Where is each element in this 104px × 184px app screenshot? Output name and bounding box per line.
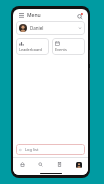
staticText: Events: [55, 47, 67, 52]
button[interactable]: Daniel: [16, 21, 85, 35]
button[interactable]: Open menu: [17, 11, 25, 19]
button[interactable]: Search: [31, 158, 50, 171]
button[interactable]: Events: [52, 38, 85, 55]
staticText: Daniel: [30, 25, 44, 31]
button[interactable]: Notifications: [75, 11, 84, 20]
button[interactable]: Home: [13, 158, 31, 171]
button[interactable]: Log list: [16, 144, 85, 155]
staticText: Menu: [27, 12, 41, 19]
staticText: Leaderboard: [19, 47, 42, 52]
button[interactable]: Library: [50, 158, 69, 171]
staticText: Log list: [25, 147, 39, 152]
button[interactable]: Leaderboard: [16, 38, 49, 55]
button[interactable]: Profile: [69, 158, 88, 171]
